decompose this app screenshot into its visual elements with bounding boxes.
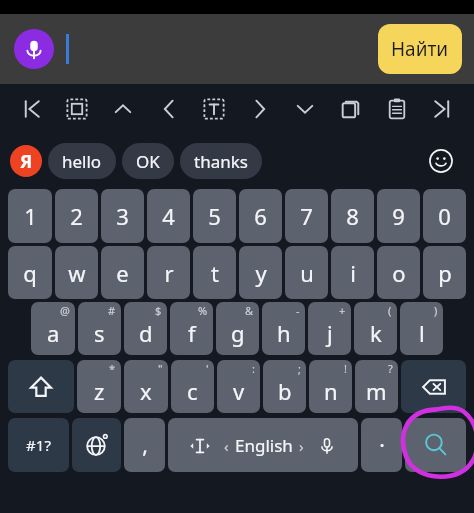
button[interactable]: + <box>308 302 351 355</box>
button[interactable]: @ <box>31 302 75 355</box>
button[interactable]: 2 <box>55 189 98 243</box>
staticText: x <box>140 376 152 406</box>
button[interactable]: OK <box>122 143 174 179</box>
button[interactable]: Move left <box>149 89 189 129</box>
button[interactable]: & <box>216 302 259 355</box>
button[interactable]: ? <box>355 360 398 413</box>
staticText: 7 <box>300 201 313 231</box>
button[interactable]: p <box>423 246 466 299</box>
staticText: ' <box>206 361 209 376</box>
button[interactable]: 9 <box>377 189 420 243</box>
staticText: 3 <box>116 201 129 231</box>
button[interactable]: thanks <box>180 143 262 179</box>
button[interactable]: w <box>55 246 98 299</box>
staticText: r <box>164 258 174 288</box>
button[interactable]: Move down <box>285 89 325 129</box>
staticText: English <box>235 434 293 457</box>
button[interactable]: #1? <box>8 418 69 472</box>
button[interactable]: t <box>193 246 236 299</box>
button[interactable]: Select all <box>57 89 97 129</box>
staticText: ( <box>388 303 392 318</box>
button[interactable]: u <box>285 246 328 299</box>
button[interactable]: i <box>331 246 374 299</box>
staticText: l <box>419 318 425 348</box>
button[interactable]: q <box>8 246 52 299</box>
button[interactable]: ' <box>171 360 214 413</box>
staticText: p <box>438 258 452 288</box>
button[interactable]: e <box>101 246 144 299</box>
button[interactable]: : <box>217 360 260 413</box>
button[interactable]: # <box>78 302 121 355</box>
button[interactable]: Jump to start <box>12 89 52 129</box>
button[interactable]: 4 <box>147 189 190 243</box>
button[interactable]: hello <box>48 143 116 179</box>
button[interactable]: Move right <box>240 89 280 129</box>
button[interactable]: Yandex <box>10 145 42 177</box>
button[interactable]: , <box>124 418 165 472</box>
staticText: OK <box>136 150 160 173</box>
staticText: + <box>339 303 346 318</box>
staticText: y <box>255 258 267 288</box>
staticText: & <box>245 303 254 318</box>
staticText: 9 <box>392 201 405 231</box>
staticText: @ <box>60 303 70 318</box>
staticText: * <box>109 361 116 376</box>
button[interactable]: Paste <box>377 89 417 129</box>
button[interactable]: Select text <box>194 89 234 129</box>
button[interactable]: % <box>170 302 213 355</box>
button[interactable]: 7 <box>285 189 328 243</box>
staticText: t <box>211 258 219 288</box>
button[interactable]: Emoji <box>424 144 458 178</box>
button[interactable]: 1 <box>8 189 52 243</box>
staticText: thanks <box>194 150 248 173</box>
staticText: ‹ <box>224 436 229 456</box>
staticText: n <box>324 376 338 406</box>
staticText: #1? <box>26 435 51 455</box>
button[interactable]: y <box>239 246 282 299</box>
staticText: Найти <box>391 36 449 62</box>
button[interactable]: r <box>147 246 190 299</box>
button[interactable]: 3 <box>101 189 144 243</box>
staticText: k <box>370 318 382 348</box>
button[interactable]: Copy <box>331 89 371 129</box>
button[interactable]: ; <box>263 360 306 413</box>
button[interactable]: ! <box>309 360 352 413</box>
button[interactable]: 5 <box>193 189 236 243</box>
button[interactable]: 8 <box>331 189 374 243</box>
button[interactable]: o <box>377 246 420 299</box>
staticText: m <box>366 376 387 406</box>
button[interactable]: 6 <box>239 189 282 243</box>
button[interactable]: · <box>361 418 402 472</box>
staticText: ) <box>434 303 438 318</box>
staticText: d <box>139 318 153 348</box>
staticText: a <box>47 318 60 348</box>
button[interactable]: * <box>77 360 121 413</box>
staticText: e <box>116 258 129 288</box>
button[interactable]: ‹ <box>168 418 358 472</box>
staticText: 4 <box>162 201 175 231</box>
button[interactable]: Change language <box>72 418 121 472</box>
staticText: Я <box>20 149 33 174</box>
button[interactable]: $ <box>124 302 167 355</box>
button[interactable]: 0 <box>423 189 466 243</box>
staticText: s <box>94 318 105 348</box>
button[interactable]: ( <box>354 302 397 355</box>
button[interactable]: " <box>124 360 168 413</box>
staticText: 5 <box>208 201 221 231</box>
staticText: % <box>198 303 208 318</box>
button[interactable]: Move up <box>103 89 143 129</box>
button[interactable]: - <box>262 302 305 355</box>
staticText: " <box>158 361 163 376</box>
staticText: hello <box>62 150 102 173</box>
button[interactable]: Jump to end <box>422 89 462 129</box>
button[interactable]: Search <box>405 418 466 472</box>
staticText: ! <box>344 361 347 376</box>
staticText: , <box>142 431 148 460</box>
button[interactable]: Backspace <box>401 360 466 413</box>
staticText: b <box>278 376 292 406</box>
button[interactable]: ) <box>400 302 443 355</box>
button[interactable]: Shift <box>8 360 74 413</box>
button[interactable]: Найти <box>378 24 462 74</box>
button[interactable]: Voice input <box>14 29 54 69</box>
staticText: 1 <box>24 201 37 231</box>
